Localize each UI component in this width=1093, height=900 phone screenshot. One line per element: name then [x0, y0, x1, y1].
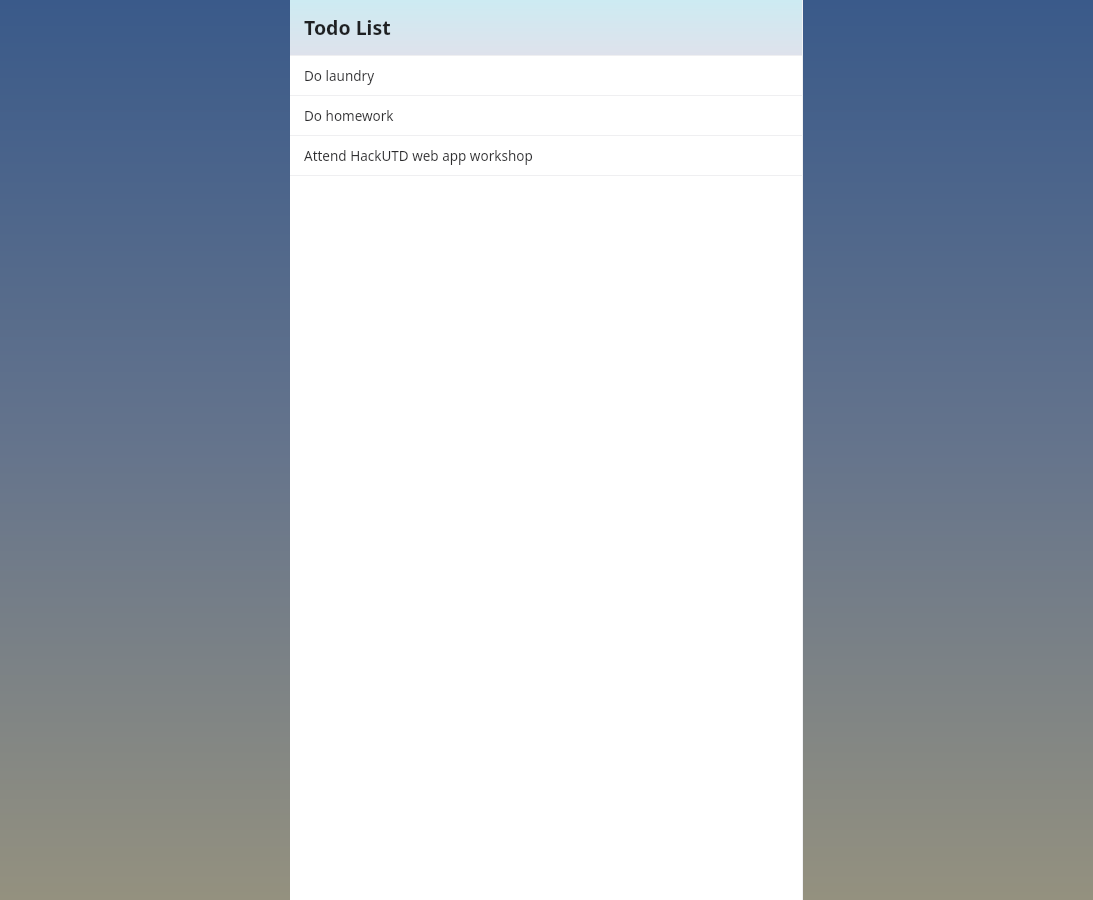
button[interactable]: Do laundry — [290, 56, 803, 95]
button[interactable]: Attend HackUTD web app workshop — [290, 136, 803, 175]
button[interactable]: Todo List — [290, 0, 803, 55]
staticText: Do homework — [304, 107, 394, 125]
staticText: Attend HackUTD web app workshop — [304, 147, 533, 165]
button[interactable]: Do homework — [290, 96, 803, 135]
staticText: Do laundry — [304, 67, 375, 85]
staticText: Todo List — [304, 14, 391, 41]
